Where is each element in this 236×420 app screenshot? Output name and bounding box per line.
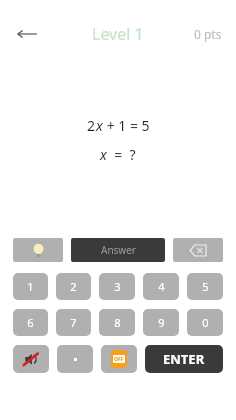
staticText: ENTER [163, 350, 205, 368]
staticText: 6 [27, 315, 34, 330]
staticText: 4 [158, 279, 165, 294]
button[interactable]: Answer [71, 238, 165, 262]
button[interactable]: 4 [143, 273, 179, 300]
staticText: x [100, 145, 107, 164]
button[interactable]: 5 [187, 273, 223, 300]
staticText: 8 [114, 315, 121, 330]
staticText: 1 [27, 279, 34, 294]
button[interactable]: 7 [56, 309, 91, 336]
button[interactable]: 1 [13, 273, 48, 300]
button[interactable]: 8 [99, 309, 135, 336]
staticText: 2 [87, 116, 96, 135]
button[interactable]: Hint [13, 238, 63, 262]
button[interactable]: Back [12, 22, 42, 46]
button[interactable]: 3 [99, 273, 135, 300]
staticText: 7 [70, 315, 77, 330]
button[interactable]: Turn off [101, 345, 137, 373]
button[interactable]: ENTER [145, 345, 223, 373]
button[interactable]: 0 [187, 309, 223, 336]
staticText: 3 [114, 279, 121, 294]
staticText: OFF [114, 356, 124, 363]
staticText: 0 [202, 315, 209, 330]
button[interactable] [57, 345, 93, 373]
staticText: 0 pts [194, 26, 222, 42]
staticText: + 1 = 5 [103, 116, 150, 135]
button[interactable]: 6 [13, 309, 48, 336]
staticText: x [96, 116, 103, 135]
button[interactable]: 9 [143, 309, 179, 336]
staticText: 2 [70, 279, 77, 294]
staticText: Level 1 [92, 23, 144, 45]
staticText: Answer [101, 243, 136, 257]
staticText: 5 [202, 279, 209, 294]
button[interactable]: Backspace [173, 238, 223, 262]
staticText: = ? [107, 145, 136, 164]
staticText: 9 [158, 315, 165, 330]
button[interactable]: 2 [56, 273, 91, 300]
button[interactable]: Sound off [13, 345, 49, 373]
